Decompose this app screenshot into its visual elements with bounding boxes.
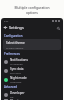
staticText: Automatic [10,80,22,83]
staticText: Notifications [10,58,28,62]
staticText: Multiple configuration options [2,5,62,15]
button[interactable]: About [1,99,63,100]
staticText: Developer [10,91,25,95]
staticText: Settings [9,25,24,30]
staticText: System default [6,46,24,49]
staticText: 9:30 [4,20,9,23]
staticText: About [10,99,19,100]
staticText: Advanced [4,85,18,89]
button[interactable]: Night mode [1,75,63,84]
button[interactable]: Search [56,26,60,30]
button[interactable]: Developer [1,90,63,99]
button[interactable]: Sync data [1,66,63,75]
staticText: Sync data [10,67,24,71]
staticText: Preferences [4,52,20,56]
staticText: All enabled [10,62,23,65]
staticText: Select theme [6,41,25,45]
staticText: Configuration [4,34,23,38]
staticText: Wi-Fi only [10,71,21,74]
button[interactable]: Back [3,25,8,30]
staticText: Night mode [10,76,27,80]
button[interactable]: Select theme [3,39,61,50]
staticText: Off [10,95,14,98]
button[interactable]: Notifications [1,57,63,66]
